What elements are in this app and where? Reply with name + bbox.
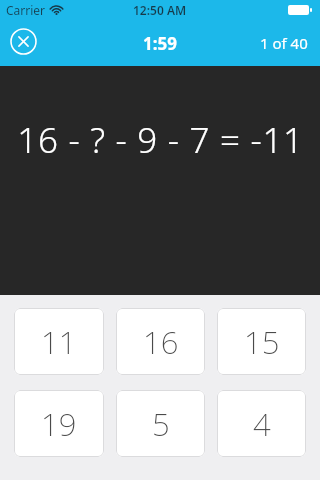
button[interactable]: 16 [116, 308, 205, 375]
staticText: 15 [244, 321, 280, 363]
staticText: 19 [41, 403, 77, 445]
staticText: 12:50 AM [133, 2, 187, 18]
staticText: 4 [253, 403, 271, 445]
button[interactable] [10, 28, 37, 55]
button[interactable]: 15 [217, 308, 306, 375]
staticText: 1:59 [143, 32, 177, 55]
staticText: Carrier [6, 2, 46, 18]
button[interactable]: 19 [14, 390, 104, 457]
staticText: 16 [143, 321, 179, 363]
staticText: 1 of 40 [260, 33, 308, 53]
button[interactable]: 11 [14, 308, 104, 375]
button[interactable]: 5 [116, 390, 205, 457]
staticText: 16 - ? - 9 - 7 = -11 [17, 116, 304, 164]
staticText: 11 [41, 321, 77, 363]
staticText: 5 [152, 403, 170, 445]
button[interactable]: 4 [217, 390, 306, 457]
